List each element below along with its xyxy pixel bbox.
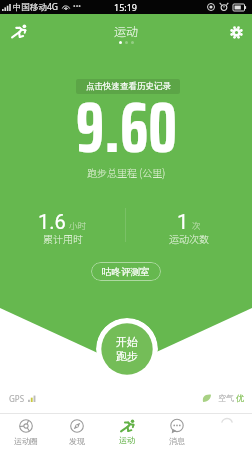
staticText: 优: [236, 393, 244, 403]
staticText: 1.6: [38, 210, 66, 233]
staticText: 空气: [218, 393, 234, 403]
staticText: 点击快速查看历史记录: [86, 81, 171, 92]
staticText: 消息: [169, 436, 185, 446]
button[interactable]: Running: [7, 19, 31, 43]
staticText: 跑步: [116, 349, 138, 363]
staticText: 咕咚评测室: [102, 266, 150, 278]
staticText: 次: [192, 219, 201, 231]
staticText: 跑步总里程 (公里): [87, 165, 166, 179]
button[interactable]: 点击快速查看历史记录: [76, 79, 180, 94]
staticText: 小时: [69, 219, 87, 231]
staticText: 15:19: [114, 1, 138, 13]
staticText: •••: [73, 2, 81, 12]
button[interactable]: Settings: [224, 20, 248, 44]
staticText: 1: [177, 210, 189, 233]
staticText: 发现: [69, 436, 85, 446]
button[interactable]: 发现: [51, 414, 102, 450]
staticText: 9.60: [76, 70, 177, 165]
staticText: 运动: [119, 435, 135, 445]
staticText: GPS: [9, 393, 25, 404]
staticText: 中国移动4G: [13, 1, 59, 13]
button[interactable]: 消息: [152, 414, 202, 450]
button[interactable]: 咕咚评测室: [91, 262, 161, 281]
staticText: 运动次数: [169, 231, 209, 245]
button[interactable]: 开始: [96, 318, 158, 380]
staticText: 运动: [114, 22, 139, 39]
button[interactable]: 运动: [102, 414, 152, 450]
staticText: 运动圈: [14, 436, 38, 446]
button[interactable]: 运动圈: [0, 414, 51, 450]
staticText: 开始: [116, 335, 138, 349]
staticText: 累计用时: [43, 231, 83, 245]
